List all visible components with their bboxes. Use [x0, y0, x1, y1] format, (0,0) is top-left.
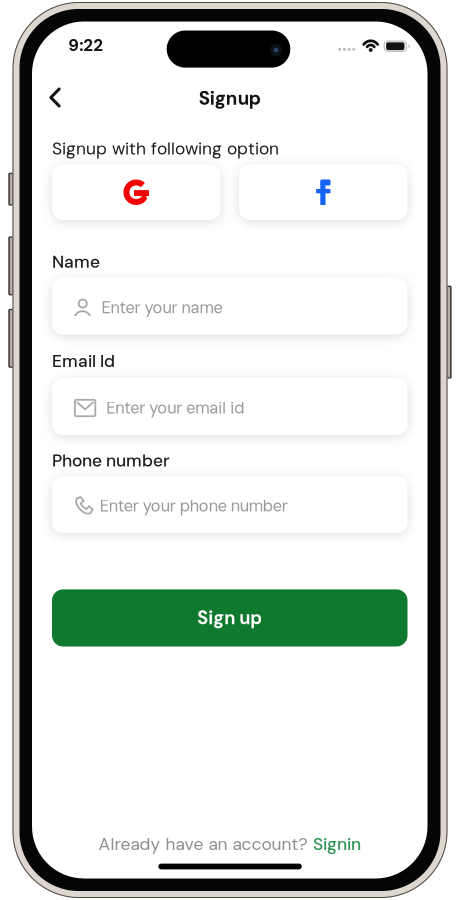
- staticText: Signup with following option: [52, 137, 279, 160]
- staticText: Enter your phone number: [100, 495, 288, 517]
- staticText: Signin: [313, 833, 361, 855]
- button[interactable]: Sign up with Google: [52, 164, 220, 220]
- button[interactable]: Enter your email id: [52, 378, 407, 435]
- button[interactable]: Already have an account?: [32, 831, 427, 857]
- staticText: Already have an account?: [98, 833, 307, 855]
- staticText: Enter your email id: [106, 397, 244, 419]
- staticText: Signup: [199, 86, 261, 111]
- staticText: Sign up: [197, 606, 262, 630]
- staticText: Email Id: [52, 350, 115, 372]
- button[interactable]: Enter your name: [52, 278, 407, 335]
- staticText: Phone number: [52, 449, 170, 472]
- staticText: 9:22: [68, 34, 103, 56]
- button[interactable]: Back: [49, 87, 83, 121]
- button[interactable]: Sign up with Facebook: [239, 164, 407, 220]
- staticText: Enter your name: [101, 297, 222, 318]
- button[interactable]: Sign up: [52, 589, 407, 646]
- button[interactable]: Enter your phone number: [52, 476, 407, 533]
- staticText: Name: [52, 251, 100, 273]
